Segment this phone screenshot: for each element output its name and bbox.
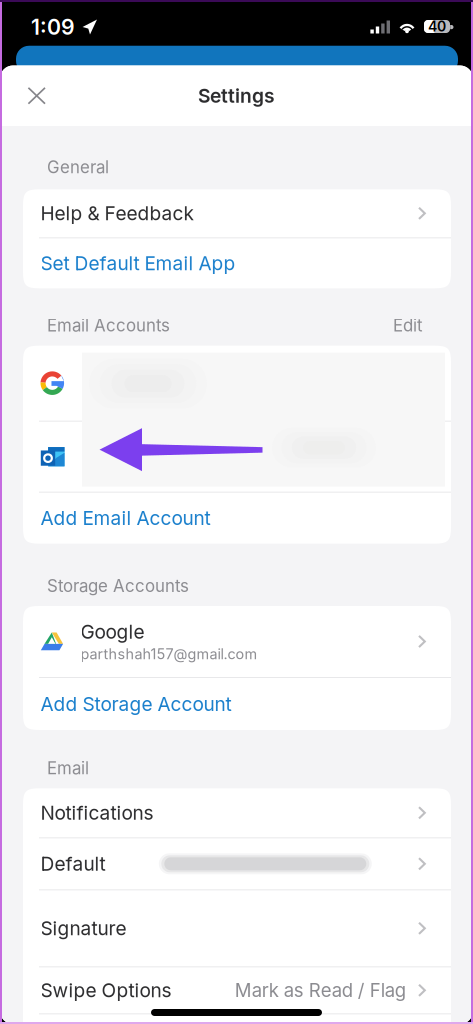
staticText: Signature — [40, 917, 126, 940]
staticText: Email — [47, 758, 89, 778]
staticText: Add Storage Account — [40, 692, 231, 715]
staticText: 40 — [428, 18, 446, 35]
staticText: Notifications — [40, 801, 153, 824]
button[interactable]: Google — [23, 606, 451, 677]
staticText: General — [47, 157, 109, 177]
staticText: Google — [80, 620, 144, 643]
button[interactable]: Set Default Email App — [23, 238, 451, 288]
staticText: parthshah157@gmail.com — [80, 645, 257, 663]
button[interactable]: Default — [23, 838, 451, 889]
staticText: Default — [40, 852, 105, 875]
button[interactable]: Help & Feedback — [23, 189, 451, 237]
staticText: Email Accounts — [47, 315, 170, 336]
button[interactable]: Signature — [23, 890, 451, 966]
staticText: Storage Accounts — [47, 576, 189, 596]
button[interactable]: Edit — [393, 315, 422, 336]
staticText: 1:09 — [31, 14, 75, 40]
staticText: Settings — [198, 84, 275, 107]
staticText: Mark as Read / Flag — [235, 979, 406, 1001]
staticText: Set Default Email App — [40, 252, 235, 275]
staticText: Help & Feedback — [40, 202, 193, 225]
staticText: Edit — [393, 315, 422, 336]
button[interactable]: Close — [0, 65, 64, 126]
button[interactable]: Swipe Options — [23, 967, 451, 1013]
staticText: Add Email Account — [40, 507, 210, 530]
button[interactable]: Notifications — [23, 788, 451, 837]
staticText: Swipe Options — [40, 979, 171, 1002]
button[interactable]: Notification Sound — [23, 1014, 451, 1024]
button[interactable]: Add Email Account — [23, 493, 451, 544]
button[interactable]: Add Storage Account — [23, 678, 451, 730]
